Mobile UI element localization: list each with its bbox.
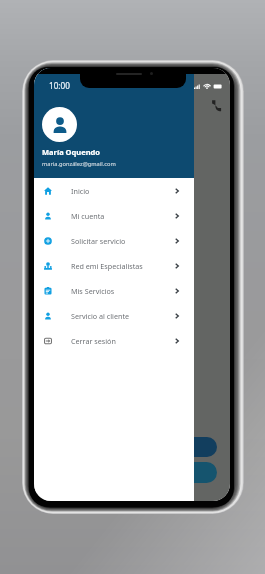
staticText: maria.gonzález@gmail.com	[42, 160, 116, 168]
button[interactable]: Mi cuenta	[34, 203, 194, 228]
staticText: Cerrar sesión	[71, 336, 116, 346]
button[interactable]: Primary action	[154, 437, 217, 457]
button[interactable]: Red emi Especialistas	[34, 253, 194, 278]
staticText: María Oquendo	[42, 147, 100, 157]
button[interactable]: Cerrar sesión	[34, 328, 194, 353]
button[interactable]: Secondary action	[154, 462, 217, 483]
button[interactable]: Profile photo	[42, 107, 77, 142]
button[interactable]: Solicitar servicio	[34, 228, 194, 253]
button[interactable]: Mis Servicios	[34, 278, 194, 303]
staticText: Solicitar servicio	[71, 236, 126, 246]
staticText: Mi cuenta	[71, 211, 105, 221]
staticText: Mis Servicios	[71, 286, 115, 296]
staticText: Inicio	[71, 186, 90, 196]
staticText: Red emi Especialistas	[71, 261, 143, 271]
staticText: 10:00	[49, 80, 70, 91]
button[interactable]: Servicio al cliente	[34, 303, 194, 328]
staticText: Servicio al cliente	[71, 311, 130, 321]
button[interactable]: Call	[208, 98, 224, 114]
button[interactable]: Inicio	[34, 178, 194, 203]
